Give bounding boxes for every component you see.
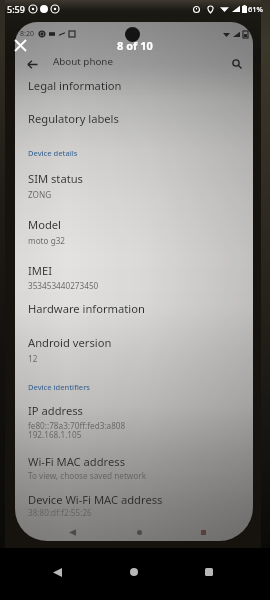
staticText: 12	[28, 353, 38, 364]
staticText: ZONG	[28, 189, 52, 200]
button[interactable]: Model	[15, 216, 253, 233]
button[interactable]: Back	[65, 525, 79, 539]
button[interactable]: IMEI	[15, 262, 253, 279]
staticText: 8:20	[20, 29, 34, 39]
button[interactable]: Regulatory labels	[15, 110, 253, 127]
button[interactable]: Home	[132, 525, 146, 539]
staticText: SIM status	[28, 171, 83, 186]
button[interactable]: Back	[47, 562, 67, 582]
staticText: IMEI	[28, 263, 52, 278]
button[interactable]: Legal information	[15, 77, 253, 94]
button[interactable]: Recent apps	[199, 562, 219, 582]
button[interactable]: Close	[9, 34, 31, 56]
button[interactable]: SIM status	[15, 170, 253, 187]
staticText: 61%	[248, 4, 263, 14]
staticText: 38:80:df:f2:55:26	[28, 507, 92, 518]
staticText: Wi-Fi MAC address	[28, 454, 126, 469]
button[interactable]: Android version	[15, 334, 253, 351]
staticText: Hardware information	[28, 301, 145, 316]
button[interactable]: Recent apps	[196, 525, 210, 539]
button[interactable]: Navigate up	[22, 54, 42, 74]
staticText: Regulatory labels	[28, 111, 119, 126]
staticText: 8 of 10	[117, 38, 153, 53]
staticText: Device Wi-Fi MAC address	[28, 492, 163, 507]
staticText: Model	[28, 217, 61, 232]
staticText: 353453440273450	[28, 280, 99, 291]
staticText: Android version	[28, 335, 112, 350]
staticText: fe80::78a3:70ff:fed3:a808	[28, 420, 126, 431]
staticText: moto g32	[28, 235, 66, 246]
button[interactable]: Wi-Fi MAC address	[15, 453, 253, 470]
staticText: To view, choose saved network	[28, 470, 147, 481]
staticText: Legal information	[28, 78, 122, 93]
staticText: Device details	[28, 148, 78, 158]
staticText: IP address	[28, 403, 83, 418]
staticText: 5:59	[7, 3, 25, 15]
staticText: About phone	[53, 55, 113, 68]
button[interactable]: Hardware information	[15, 300, 253, 317]
staticText: Device identifiers	[28, 382, 90, 392]
staticText: 192.168.1.105	[28, 429, 82, 440]
button[interactable]: Home	[124, 562, 144, 582]
button[interactable]: Search	[227, 54, 247, 74]
button[interactable]: IP address	[15, 402, 253, 419]
button[interactable]: Device Wi-Fi MAC address	[15, 491, 253, 508]
